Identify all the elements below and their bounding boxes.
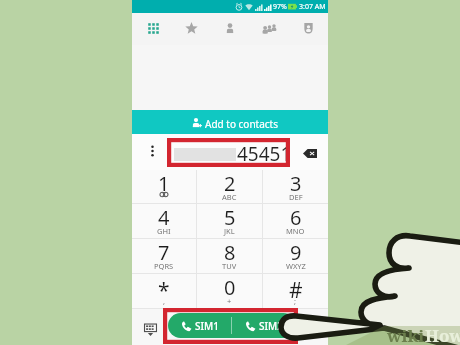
button[interactable]: #: [263, 274, 328, 308]
button[interactable]: Add to contacts: [132, 110, 328, 134]
staticText: 9: [290, 239, 302, 266]
staticText: +: [227, 296, 232, 306]
button[interactable]: 9: [263, 239, 328, 273]
button[interactable]: SIM1: [168, 313, 231, 338]
staticText: SIM2: [259, 319, 283, 333]
staticText: *: [158, 276, 170, 305]
staticText: Add to contacts: [205, 117, 278, 131]
staticText: 8: [224, 239, 236, 266]
button[interactable]: 1: [132, 170, 196, 203]
button[interactable]: 7: [132, 239, 196, 273]
button[interactable]: 6: [263, 204, 328, 238]
staticText: 1: [158, 170, 170, 197]
button[interactable]: Protected contacts: [294, 14, 322, 42]
staticText: 2: [224, 170, 236, 197]
staticText: 6: [290, 204, 302, 231]
staticText: 97%: [273, 2, 287, 12]
button[interactable]: 5: [197, 204, 262, 238]
staticText: MNO: [286, 226, 305, 236]
staticText: GHI: [157, 226, 171, 236]
button[interactable]: 8: [197, 239, 262, 273]
staticText: SIM1: [195, 319, 219, 333]
button[interactable]: SIM2: [232, 313, 296, 338]
button[interactable]: Groups: [255, 14, 283, 42]
staticText: 45451: [237, 141, 292, 167]
staticText: How: [425, 324, 460, 345]
button[interactable]: 0: [197, 274, 262, 308]
button[interactable]: Hide keypad: [142, 321, 158, 337]
button[interactable]: Backspace: [299, 142, 321, 164]
staticText: ABC: [222, 192, 237, 202]
button[interactable]: Voice input: [302, 320, 320, 338]
button[interactable]: More options: [143, 142, 161, 160]
staticText: 0: [224, 274, 236, 301]
button[interactable]: Contacts: [216, 14, 244, 42]
button[interactable]: *: [132, 274, 196, 308]
staticText: 5: [224, 204, 236, 231]
staticText: wiki: [387, 324, 425, 345]
staticText: WXYZ: [286, 261, 306, 271]
staticText: TUV: [222, 261, 237, 271]
staticText: 7: [158, 239, 170, 266]
button[interactable]: 2: [197, 170, 262, 203]
staticText: ;: [294, 296, 297, 306]
button[interactable]: 3: [263, 170, 328, 203]
staticText: 3: [290, 170, 302, 197]
staticText: #: [289, 276, 303, 305]
staticText: ,: [163, 296, 166, 306]
staticText: PQRS: [154, 261, 174, 271]
staticText: 3:07 AM: [299, 2, 326, 12]
button[interactable]: Keypad: [139, 14, 167, 42]
staticText: JKL: [224, 226, 235, 236]
staticText: 4: [158, 204, 170, 231]
button[interactable]: 4: [132, 204, 196, 238]
staticText: DEF: [289, 192, 303, 202]
button[interactable]: Favourites: [177, 14, 205, 42]
